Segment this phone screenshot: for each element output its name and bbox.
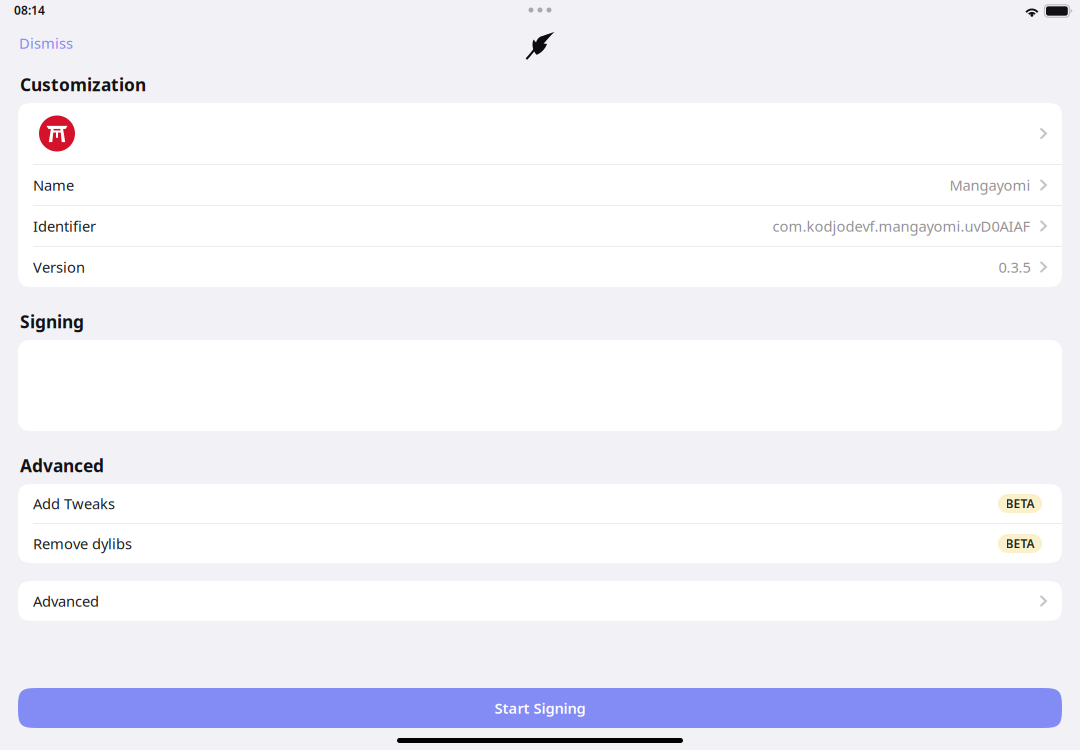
staticText: Dismiss <box>19 33 73 53</box>
button[interactable]: Advanced <box>0 581 1080 621</box>
staticText: Version <box>33 257 85 277</box>
button[interactable]: Start Signing <box>0 688 1080 728</box>
staticText: Start Signing <box>494 698 585 718</box>
staticText: com.kodjodevf.mangayomi.uvD0AIAF <box>772 216 1030 236</box>
staticText: Remove dylibs <box>33 534 132 553</box>
staticText: Identifier <box>33 216 96 236</box>
staticText: Customization <box>20 73 146 96</box>
button[interactable]: Add Tweaks <box>18 484 1062 523</box>
staticText: Signing <box>20 310 84 333</box>
staticText: Advanced <box>20 454 104 477</box>
staticText: Advanced <box>33 591 99 611</box>
button[interactable]: Identifier <box>18 206 1062 246</box>
staticText: Add Tweaks <box>33 494 115 513</box>
staticText: 08:14 <box>14 2 45 18</box>
staticText: BETA <box>1005 495 1034 511</box>
staticText: BETA <box>1005 535 1034 551</box>
staticText: Name <box>33 175 74 195</box>
button[interactable]: Name <box>18 165 1062 205</box>
button[interactable] <box>18 103 1062 164</box>
button[interactable]: Remove dylibs <box>18 524 1062 563</box>
staticText: Mangayomi <box>949 175 1030 195</box>
button[interactable]: Version <box>18 247 1062 287</box>
button[interactable]: Dismiss <box>0 26 91 64</box>
staticText: 0.3.5 <box>998 257 1030 277</box>
button[interactable]: Sign <box>524 30 555 60</box>
